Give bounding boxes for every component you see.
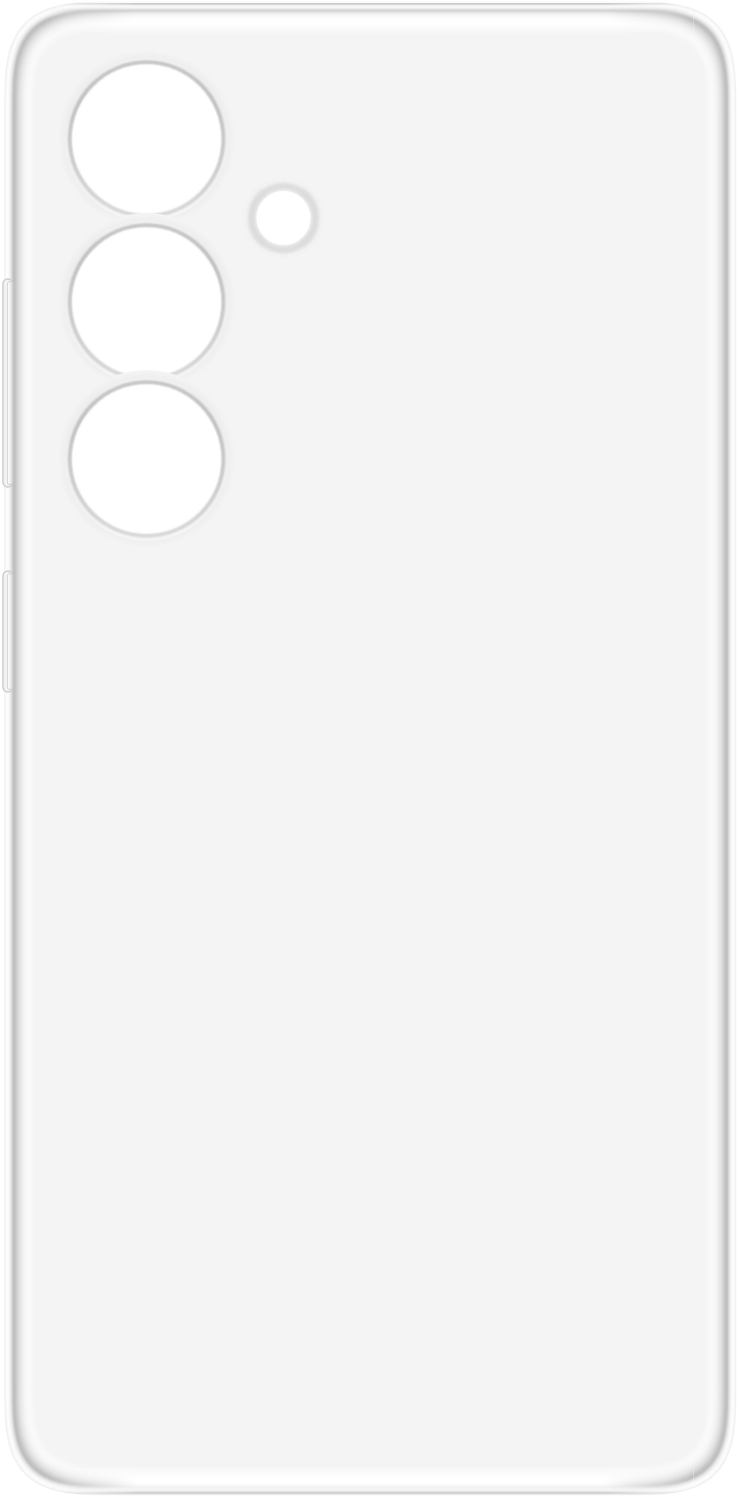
button[interactable]: Clear phone case product photo — [0, 0, 739, 1500]
